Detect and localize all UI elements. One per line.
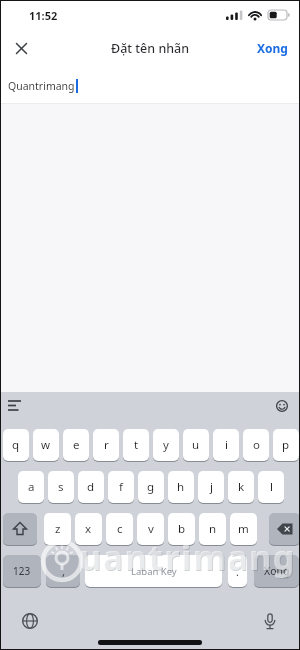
staticText: b xyxy=(178,521,186,537)
staticText: Quantrimang xyxy=(8,79,75,93)
button[interactable]: e xyxy=(63,429,89,461)
button[interactable]: a xyxy=(18,471,44,503)
staticText: Đặt tên nhãn xyxy=(111,40,190,57)
button[interactable] xyxy=(9,36,33,60)
staticText: Xong xyxy=(257,40,288,56)
staticText: q xyxy=(12,437,20,453)
button[interactable]: p xyxy=(273,429,299,461)
button[interactable]: n xyxy=(199,513,226,545)
staticText: a xyxy=(28,479,35,495)
staticText: s xyxy=(58,479,64,495)
button[interactable]: k xyxy=(228,471,254,503)
button[interactable] xyxy=(258,609,282,633)
button[interactable]: v xyxy=(137,513,164,545)
staticText: v xyxy=(148,521,154,537)
staticText: uantrimang xyxy=(80,535,297,581)
staticText: k xyxy=(238,479,245,495)
button[interactable] xyxy=(271,395,293,417)
button[interactable]: Xong xyxy=(254,555,299,587)
staticText: d xyxy=(87,479,95,495)
staticText: e xyxy=(73,437,80,453)
staticText: y xyxy=(163,437,169,453)
staticText: , xyxy=(62,564,65,579)
staticText: j xyxy=(210,479,213,495)
button[interactable]: g xyxy=(138,471,164,503)
staticText: Xong xyxy=(264,564,290,578)
button[interactable]: j xyxy=(198,471,224,503)
button[interactable]: l xyxy=(258,471,284,503)
button[interactable]: y xyxy=(153,429,179,461)
button[interactable]: x xyxy=(75,513,102,545)
button[interactable] xyxy=(18,609,42,633)
button[interactable] xyxy=(4,395,26,417)
button[interactable]: . xyxy=(228,555,247,587)
button[interactable]: c xyxy=(106,513,133,545)
button[interactable]: h xyxy=(168,471,194,503)
button[interactable] xyxy=(3,513,37,545)
button[interactable]: 123 xyxy=(3,555,41,587)
staticText: n xyxy=(209,521,217,537)
button[interactable]: o xyxy=(243,429,269,461)
staticText: 11:52 xyxy=(29,8,58,23)
button[interactable]: Laban Key xyxy=(85,555,222,587)
button[interactable]: w xyxy=(33,429,59,461)
button[interactable]: , xyxy=(46,555,80,587)
staticText: m xyxy=(238,521,249,537)
staticText: . xyxy=(236,564,239,579)
button[interactable]: Xong xyxy=(257,40,288,56)
staticText: l xyxy=(270,479,273,495)
staticText: o xyxy=(253,437,260,453)
staticText: g xyxy=(147,479,155,495)
staticText: c xyxy=(117,521,123,537)
button[interactable]: b xyxy=(168,513,195,545)
staticText: p xyxy=(282,437,290,453)
button[interactable] xyxy=(269,513,300,545)
staticText: r xyxy=(104,437,109,453)
button[interactable]: Quantrimang xyxy=(0,68,300,104)
staticText: i xyxy=(225,437,228,453)
staticText: f xyxy=(119,479,123,495)
staticText: t xyxy=(134,437,139,453)
button[interactable]: m xyxy=(230,513,257,545)
button[interactable]: q xyxy=(3,429,29,461)
staticText: u xyxy=(192,437,200,453)
staticText: w xyxy=(41,437,51,453)
staticText: x xyxy=(85,521,92,537)
button[interactable]: t xyxy=(123,429,149,461)
staticText: z xyxy=(55,521,61,537)
button[interactable]: i xyxy=(213,429,239,461)
button[interactable]: u xyxy=(183,429,209,461)
button[interactable]: z xyxy=(44,513,71,545)
button[interactable]: r xyxy=(93,429,119,461)
staticText: uantrimang xyxy=(79,534,296,580)
button[interactable]: f xyxy=(108,471,134,503)
staticText: h xyxy=(177,479,185,495)
button[interactable]: d xyxy=(78,471,104,503)
button[interactable]: s xyxy=(48,471,74,503)
staticText: Laban Key xyxy=(131,565,177,578)
staticText: 123 xyxy=(13,564,31,578)
